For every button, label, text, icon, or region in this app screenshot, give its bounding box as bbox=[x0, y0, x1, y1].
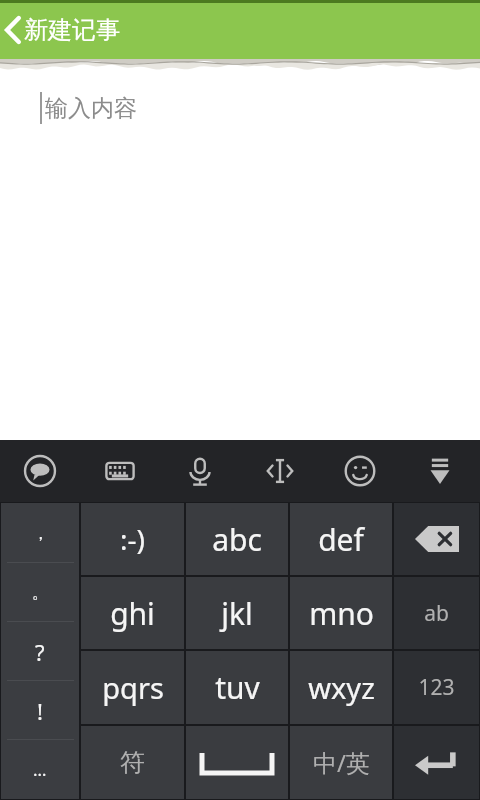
staticText: … bbox=[33, 758, 47, 781]
button[interactable]: ? bbox=[1, 622, 79, 681]
button[interactable]: abc bbox=[186, 503, 288, 575]
staticText: 中/英 bbox=[313, 746, 370, 779]
button[interactable]: 123 bbox=[394, 651, 479, 724]
button[interactable]: … bbox=[1, 740, 79, 799]
button[interactable]: pqrs bbox=[81, 651, 184, 724]
button[interactable]: Voice input bbox=[160, 440, 240, 502]
staticText: ， bbox=[32, 523, 49, 544]
staticText: 123 bbox=[418, 673, 455, 702]
button[interactable]: 符 bbox=[81, 726, 184, 799]
button[interactable]: backspace bbox=[394, 503, 479, 575]
button[interactable]: wxyz bbox=[290, 651, 392, 724]
staticText: 输入内容 bbox=[45, 94, 137, 123]
button[interactable]: enter bbox=[394, 726, 479, 799]
staticText: 新建记事 bbox=[24, 15, 120, 45]
button[interactable]: iFly bbox=[0, 440, 80, 502]
button[interactable]: 。 bbox=[1, 563, 79, 622]
button[interactable]: def bbox=[290, 503, 392, 575]
staticText: def bbox=[318, 519, 364, 560]
button[interactable]: :-) bbox=[81, 503, 184, 575]
staticText: ab bbox=[424, 599, 449, 628]
button[interactable]: ab bbox=[394, 577, 479, 649]
button[interactable]: Back bbox=[0, 0, 24, 59]
staticText: wxyz bbox=[308, 668, 375, 707]
staticText: ! bbox=[37, 696, 43, 726]
button[interactable]: ， bbox=[1, 503, 79, 563]
staticText: tuv bbox=[215, 667, 260, 708]
button[interactable]: ghi bbox=[81, 577, 184, 649]
staticText: mno bbox=[309, 593, 374, 634]
button[interactable]: tuv bbox=[186, 651, 288, 724]
staticText: jkl bbox=[221, 593, 253, 634]
button[interactable]: space bbox=[186, 726, 288, 799]
button[interactable]: Collapse bbox=[400, 440, 480, 502]
staticText: abc bbox=[212, 519, 262, 560]
staticText: 符 bbox=[120, 747, 145, 778]
staticText: :-) bbox=[120, 520, 145, 558]
button[interactable]: ! bbox=[1, 681, 79, 740]
staticText: pqrs bbox=[102, 668, 164, 707]
button[interactable]: 中/英 bbox=[290, 726, 392, 799]
button[interactable]: Emoji bbox=[320, 440, 400, 502]
staticText: ghi bbox=[110, 593, 155, 634]
button[interactable]: Keyboard bbox=[80, 440, 160, 502]
staticText: ? bbox=[35, 637, 45, 667]
staticText: 。 bbox=[32, 582, 49, 603]
button[interactable]: Cursor bbox=[240, 440, 320, 502]
button[interactable]: mno bbox=[290, 577, 392, 649]
button[interactable]: jkl bbox=[186, 577, 288, 649]
